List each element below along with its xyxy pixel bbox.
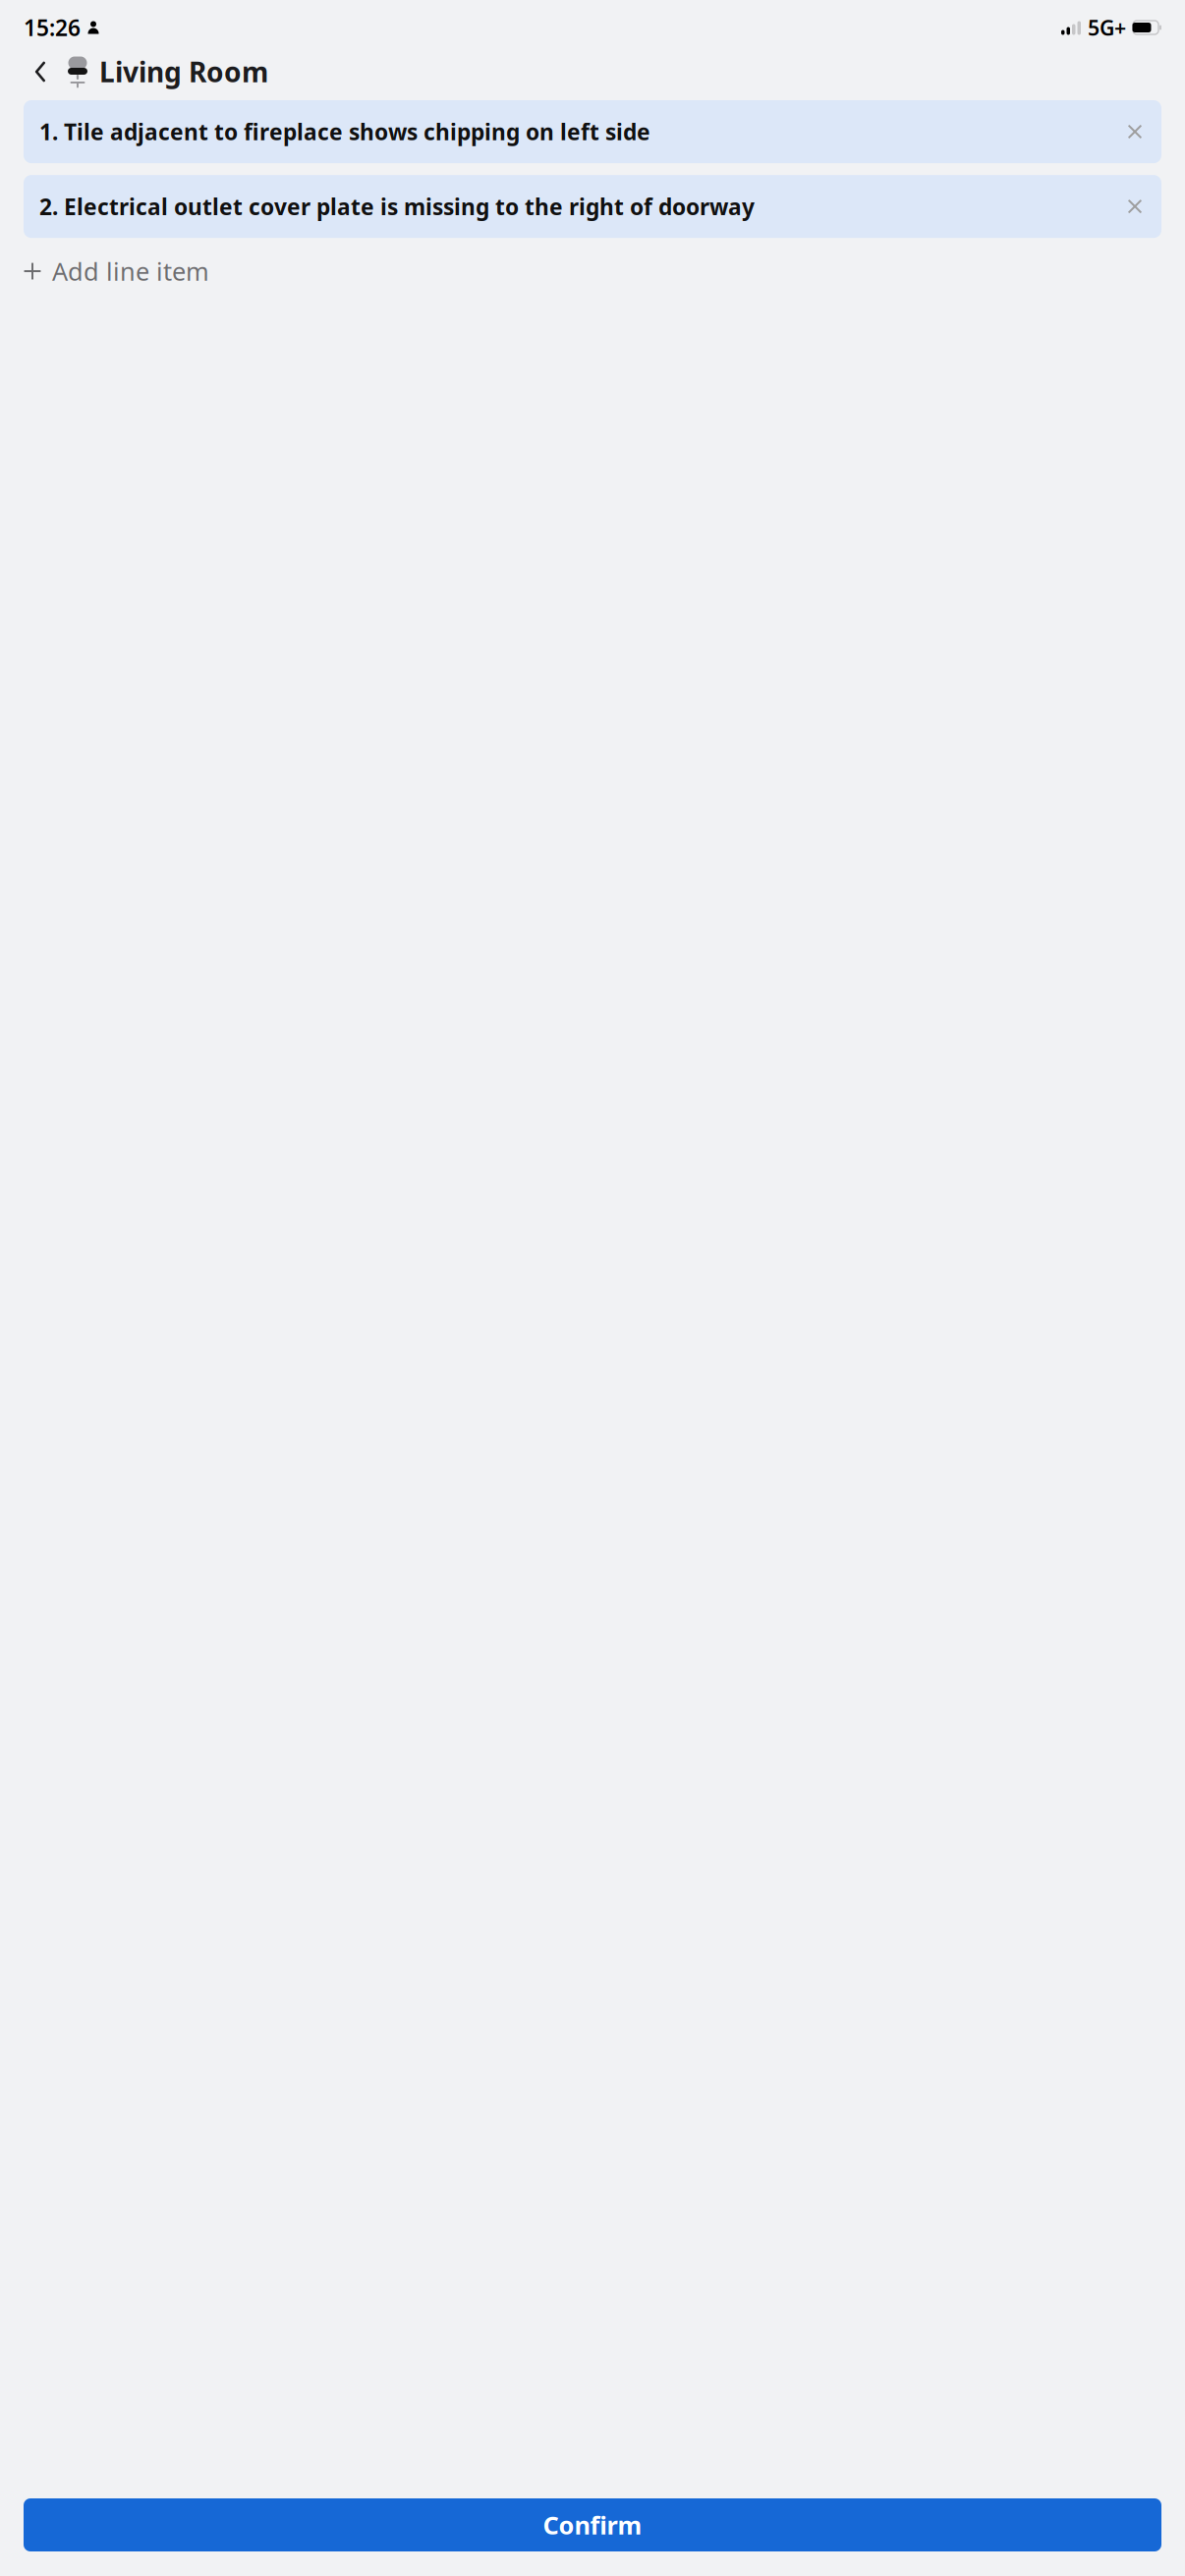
- button[interactable]: Remove line item: [1122, 194, 1148, 219]
- button[interactable]: Back: [24, 50, 57, 93]
- staticText: Living Room: [99, 53, 268, 90]
- button[interactable]: 2. Electrical outlet cover plate is miss…: [24, 175, 1161, 238]
- button[interactable]: 1. Tile adjacent to fireplace shows chip…: [24, 100, 1161, 163]
- button[interactable]: Remove line item: [1122, 119, 1148, 144]
- staticText: 2. Electrical outlet cover plate is miss…: [39, 192, 755, 221]
- staticText: 1. Tile adjacent to fireplace shows chip…: [39, 117, 650, 146]
- staticText: 15:26: [24, 13, 81, 42]
- staticText: 5G+: [1088, 14, 1126, 41]
- staticText: Add line item: [52, 255, 209, 288]
- staticText: Confirm: [543, 2508, 642, 2541]
- button[interactable]: Confirm: [24, 2498, 1161, 2551]
- button[interactable]: Add line item: [24, 246, 1161, 297]
